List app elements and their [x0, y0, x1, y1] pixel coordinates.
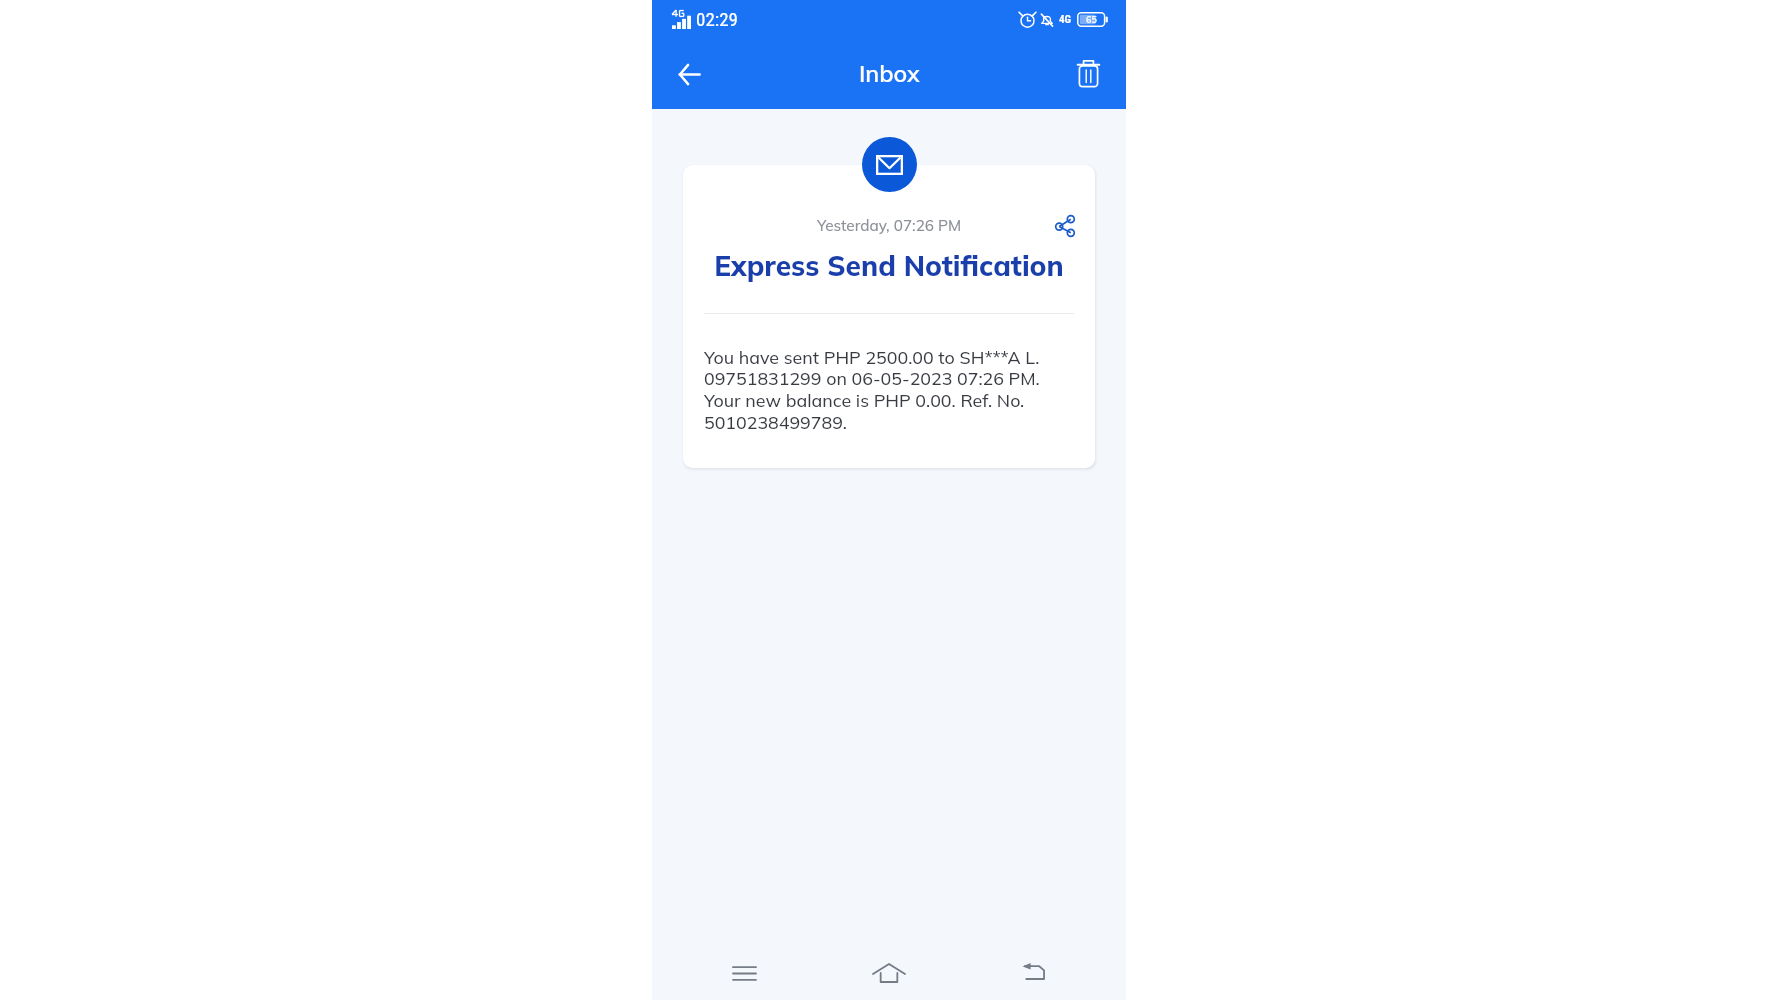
- staticText: 65: [1086, 14, 1097, 25]
- staticText: You have sent PHP 2500.00 to SH***A L. 0…: [704, 346, 1060, 434]
- staticText: Inbox: [859, 58, 920, 87]
- button[interactable]: Share: [1051, 213, 1079, 237]
- staticText: 4G: [1059, 13, 1071, 26]
- button[interactable]: Back: [669, 54, 709, 94]
- button[interactable]: Home: [865, 949, 913, 997]
- button[interactable]: Back: [1009, 949, 1057, 997]
- button[interactable]: Yesterday, 07:26 PM: [683, 165, 1095, 468]
- button[interactable]: Recents: [720, 949, 768, 997]
- staticText: Yesterday, 07:26 PM: [817, 216, 962, 235]
- staticText: 02:29: [696, 8, 738, 30]
- button[interactable]: Message: [862, 137, 917, 192]
- button[interactable]: Delete: [1068, 54, 1108, 94]
- staticText: Express Send Notification: [683, 248, 1095, 283]
